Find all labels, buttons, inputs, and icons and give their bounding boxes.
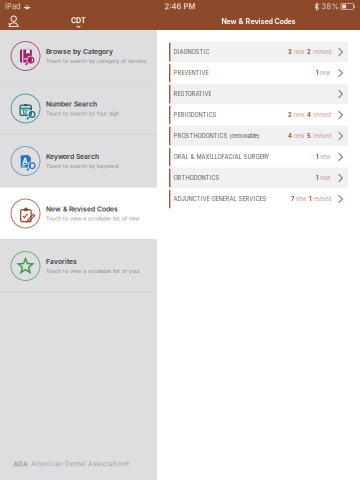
staticText: American Dental Association®: [31, 460, 129, 468]
staticText: new: [294, 196, 307, 202]
button[interactable]: A: [0, 135, 157, 187]
staticText: RESTORATIVE: [173, 91, 211, 97]
staticText: Keyword Search: [46, 153, 99, 161]
staticText: DIAGNOSTIC: [173, 49, 209, 55]
staticText: 3: [288, 48, 292, 55]
staticText: revised: [311, 196, 331, 202]
staticText: 4: [305, 111, 311, 118]
staticText: 5: [305, 132, 311, 139]
staticText: 123: [22, 109, 32, 115]
staticText: Favorites: [46, 258, 77, 266]
staticText: 2:46 PM: [164, 2, 195, 11]
staticText: new: [318, 70, 331, 76]
staticText: New & Revised Codes: [221, 17, 295, 26]
staticText: Number Search: [46, 100, 97, 108]
staticText: iPad: [5, 2, 21, 11]
staticText: 4: [288, 132, 292, 139]
button[interactable]: ADJUNCTIVE GENERAL SERVICES: [169, 188, 348, 209]
button[interactable]: PREVENTIVE: [169, 62, 348, 83]
staticText: new: [292, 49, 305, 55]
staticText: Touch to search by category of service.: [46, 58, 148, 64]
button[interactable]: 123: [0, 82, 157, 134]
staticText: PERIODONTICS: [173, 112, 216, 118]
staticText: new: [292, 133, 305, 139]
staticText: CDT: [71, 16, 86, 25]
staticText: Touch to view a scrollable list of new: [46, 215, 139, 222]
staticText: ADJUNCTIVE GENERAL SERVICES: [173, 196, 266, 202]
button[interactable]: ORAL & MAXILLOFACIAL SURGERY: [169, 146, 348, 167]
staticText: ADA: [13, 460, 28, 468]
staticText: A: [22, 157, 28, 166]
button[interactable]: Browse by Category: [0, 30, 157, 82]
button[interactable]: PERIODONTICS: [169, 104, 348, 125]
staticText: revised: [311, 133, 331, 139]
staticText: new: [318, 154, 331, 160]
button[interactable]: ORTHODONTICS: [169, 167, 348, 188]
button[interactable]: Favorites: [0, 240, 157, 292]
staticText: PROSTHODONTICS (removable): [173, 133, 259, 139]
staticText: 38%: [321, 2, 338, 11]
staticText: 1: [316, 69, 318, 76]
staticText: revised: [311, 49, 331, 55]
staticText: Touch to view a scrollable list of your: [46, 268, 140, 274]
staticText: 7: [291, 195, 294, 202]
button[interactable]: PROSTHODONTICS (removable): [169, 125, 348, 146]
staticText: PREVENTIVE: [173, 70, 208, 76]
staticText: ORTHODONTICS: [173, 175, 219, 181]
staticText: New & Revised Codes: [46, 205, 118, 213]
staticText: Browse by Category: [46, 48, 113, 56]
staticText: new: [292, 112, 305, 118]
button[interactable]: Account: [8, 14, 27, 29]
button[interactable]: DIAGNOSTIC: [169, 41, 348, 62]
button[interactable]: RESTORATIVE: [169, 83, 348, 104]
staticText: new: [318, 175, 331, 181]
staticText: 1: [316, 153, 318, 160]
staticText: Touch to search by four digit: [46, 110, 119, 117]
staticText: ORAL & MAXILLOFACIAL SURGERY: [173, 154, 269, 160]
staticText: revised: [311, 112, 331, 118]
staticText: 1: [307, 195, 311, 202]
staticText: Touch to search by keyword.: [46, 163, 120, 169]
button[interactable]: New & Revised Codes: [0, 187, 157, 239]
staticText: 1: [316, 174, 318, 181]
staticText: 2: [305, 48, 311, 55]
staticText: 2: [288, 111, 292, 118]
